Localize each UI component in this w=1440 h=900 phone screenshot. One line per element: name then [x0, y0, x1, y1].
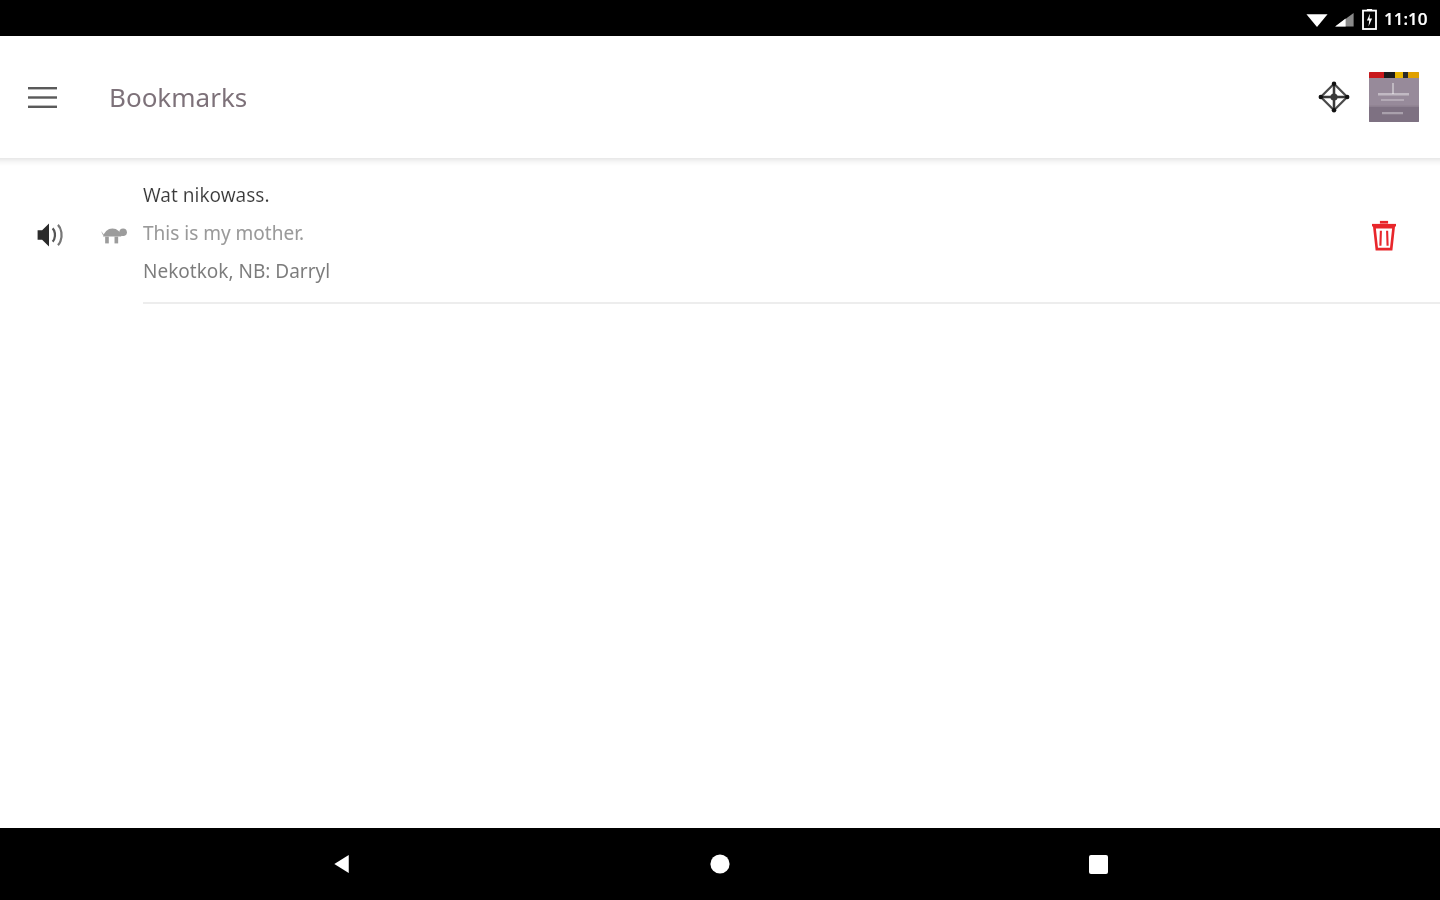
button[interactable]: Open dictionary cover — [1368, 71, 1420, 123]
staticText: Wat nikowass. — [143, 182, 270, 208]
button[interactable]: Play slowly — [88, 209, 140, 261]
button[interactable]: Delete bookmark — [1356, 207, 1412, 263]
button[interactable]: Home — [684, 828, 756, 900]
staticText: Bookmarks — [109, 79, 248, 114]
staticText: 11:10 — [1384, 7, 1428, 30]
button[interactable]: Play audio — [24, 207, 80, 263]
button[interactable]: Recent apps — [1062, 828, 1134, 900]
button[interactable]: Move — [1310, 73, 1358, 121]
button[interactable]: Play audio — [0, 166, 1440, 304]
button[interactable]: Back — [306, 828, 378, 900]
button[interactable]: Open navigation menu — [14, 69, 70, 125]
staticText: Nekotkok, NB: Darryl — [143, 258, 331, 284]
staticText: This is my mother. — [143, 220, 305, 246]
